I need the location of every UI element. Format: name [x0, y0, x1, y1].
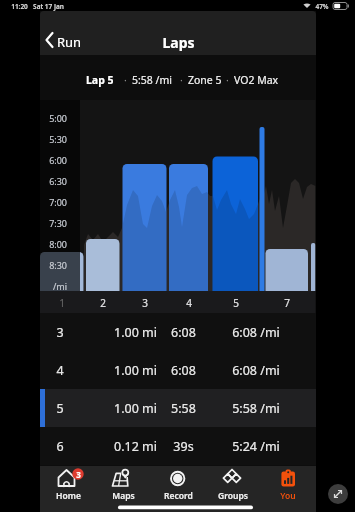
staticText: 6	[56, 438, 64, 455]
staticText: 1.00 mi	[114, 362, 157, 379]
staticText: 1.00 mi	[114, 324, 157, 341]
staticText: ·	[124, 73, 127, 87]
staticText: 6:00	[49, 154, 67, 166]
staticText: Lap 5	[86, 73, 114, 87]
staticText: 5:24 /mi	[232, 438, 280, 455]
staticText: 7:00	[49, 196, 67, 208]
staticText: 4	[186, 296, 192, 310]
staticText: 6:08	[171, 362, 196, 379]
button[interactable]	[40, 313, 316, 351]
staticText: Groups	[218, 490, 248, 502]
staticText: 3	[142, 296, 148, 310]
staticText: /mi	[52, 280, 67, 292]
staticText: 1	[59, 296, 65, 310]
staticText: Maps	[112, 490, 135, 502]
staticText: 5	[233, 296, 239, 310]
staticText: Run	[57, 33, 82, 51]
staticText: 0.12 mi	[114, 438, 157, 455]
staticText: Record	[164, 490, 193, 502]
button[interactable]	[40, 389, 316, 427]
staticText: Home	[56, 490, 81, 502]
staticText: 1.00 mi	[114, 400, 157, 417]
staticText: 4	[56, 362, 64, 379]
staticText: 47%	[315, 2, 329, 11]
staticText: Zone 5	[188, 73, 222, 87]
button[interactable]	[42, 26, 92, 54]
button[interactable]	[41, 466, 95, 511]
staticText: 8:30	[49, 259, 67, 271]
staticText: 5:58	[171, 400, 196, 417]
staticText: ·	[226, 73, 229, 87]
button[interactable]	[40, 351, 316, 389]
staticText: 6:08	[171, 324, 196, 341]
staticText: 7	[284, 296, 290, 310]
staticText: 6:08 /mi	[232, 362, 280, 379]
staticText: 5:58 /mi	[232, 400, 280, 417]
button[interactable]	[151, 466, 205, 511]
staticText: VO2 Max	[234, 73, 279, 87]
staticText: 2	[100, 296, 106, 310]
staticText: Sat 17 Jan	[33, 2, 64, 11]
staticText: 5:30	[49, 133, 67, 145]
staticText: 8:00	[49, 238, 67, 250]
staticText: 3	[76, 469, 81, 480]
staticText: 6:08 /mi	[232, 324, 280, 341]
staticText: 6:30	[49, 175, 67, 187]
button[interactable]	[40, 427, 316, 465]
staticText: ·	[180, 73, 183, 87]
button[interactable]	[96, 466, 150, 511]
staticText: You	[280, 490, 296, 502]
staticText: 5	[56, 400, 64, 417]
staticText: 3	[56, 324, 64, 341]
staticText: 11:20	[11, 2, 28, 11]
staticText: Laps	[162, 33, 195, 52]
staticText: 5:58 /mi	[132, 73, 172, 87]
button[interactable]	[261, 466, 315, 511]
button[interactable]	[206, 466, 260, 511]
staticText: 5:00	[49, 112, 67, 124]
staticText: 7:30	[49, 217, 67, 229]
staticText: 39s	[173, 438, 194, 455]
button[interactable]	[60, 68, 296, 90]
